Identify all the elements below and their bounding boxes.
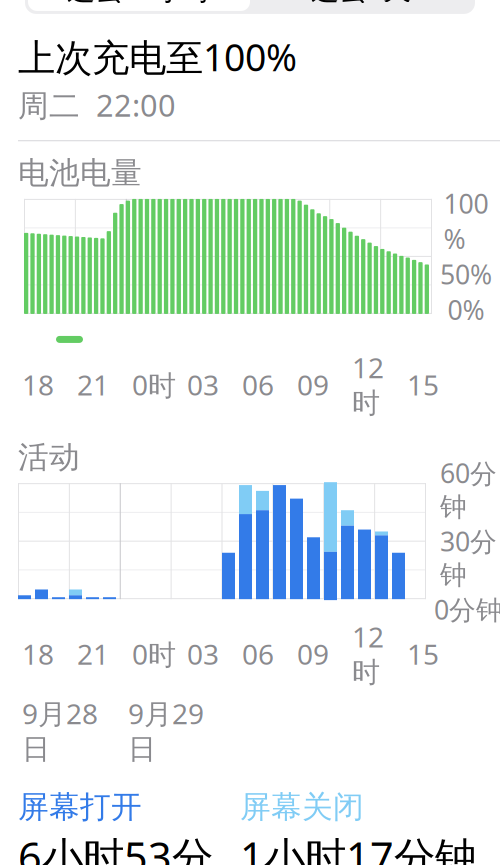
staticText: 0时 — [132, 635, 176, 672]
staticText: 06 — [242, 635, 274, 672]
staticText: 9月28日 — [22, 695, 98, 766]
staticText: 18 — [22, 366, 54, 403]
staticText: 03 — [187, 366, 219, 403]
staticText: 屏幕打开 — [18, 788, 142, 826]
staticText: 过去24小时 — [67, 0, 211, 8]
staticText: 50% — [440, 256, 492, 292]
staticText: 12时 — [352, 349, 384, 420]
staticText: 0时 — [132, 366, 176, 403]
button[interactable]: 过去3天 — [250, 0, 472, 11]
staticText: 09 — [297, 366, 329, 403]
staticText: 1小时17分钟 — [240, 829, 476, 865]
staticText: 9月29日 — [128, 695, 204, 766]
staticText: 21 — [77, 366, 109, 403]
staticText: 09 — [297, 635, 329, 672]
staticText: 21 — [77, 635, 109, 672]
staticText: 0% — [447, 292, 484, 327]
staticText: 上次充电至100% — [18, 32, 297, 81]
staticText: 100% — [443, 186, 488, 256]
staticText: 60分钟 — [440, 455, 497, 523]
staticText: 18 — [22, 635, 54, 672]
staticText: 0分钟 — [434, 592, 500, 627]
staticText: 电池电量 — [18, 154, 142, 192]
staticText: 周二 22:00 — [18, 84, 176, 125]
staticText: 30分钟 — [440, 523, 497, 592]
button[interactable]: 过去24小时 — [28, 0, 250, 11]
staticText: 15 — [407, 635, 439, 672]
staticText: 12时 — [352, 618, 384, 690]
staticText: 屏幕关闭 — [240, 788, 364, 826]
staticText: 15 — [407, 366, 439, 403]
staticText: 活动 — [18, 438, 80, 476]
staticText: 6小时53分钟 — [18, 829, 213, 865]
staticText: 过去3天 — [311, 0, 411, 8]
staticText: 06 — [242, 366, 274, 403]
staticText: 03 — [187, 635, 219, 672]
